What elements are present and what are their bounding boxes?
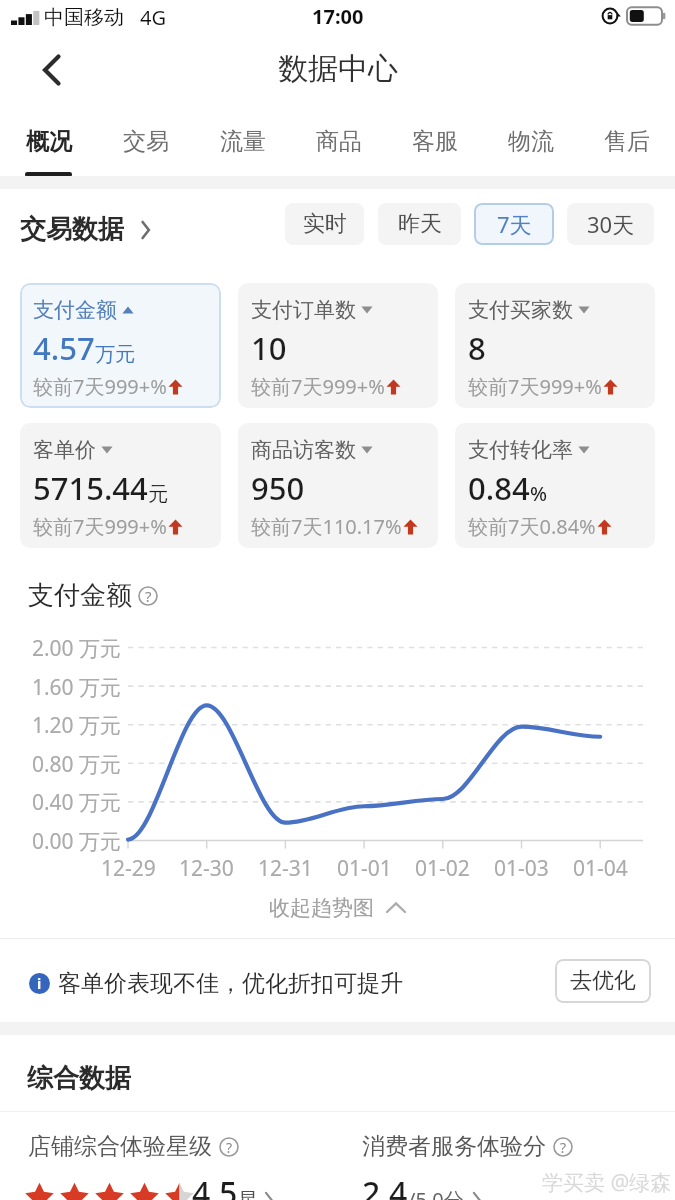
button[interactable]: 说明 (138, 586, 158, 606)
staticText: 实时 (303, 210, 347, 238)
button[interactable]: 返回 (0, 35, 70, 105)
staticText: 0.80 万元 (31, 750, 121, 776)
staticText: 收起趋势图 (269, 895, 374, 921)
staticText: 支付订单数 (251, 297, 356, 323)
staticText: 较前7天0.84% (468, 513, 596, 540)
button[interactable]: 支付金额 (20, 283, 221, 408)
button[interactable]: 客单价 (20, 423, 221, 548)
staticText: 客服 (412, 127, 458, 156)
staticText: 0.84 (468, 467, 530, 509)
staticText: 1.60 万元 (31, 673, 121, 699)
staticText: 元 (148, 482, 168, 507)
staticText: 星 (238, 1188, 258, 1200)
staticText: 5715.44 (33, 467, 148, 509)
staticText: 较前7天110.17% (251, 513, 402, 540)
staticText: 12-29 (101, 854, 156, 880)
staticText: 交易 (123, 127, 169, 156)
staticText: 售后 (604, 127, 650, 156)
button[interactable]: 7天 (474, 203, 554, 245)
button[interactable]: 售后 (579, 105, 675, 176)
staticText: 2.00 万元 (31, 634, 121, 660)
button[interactable]: 支付买家数 (455, 283, 655, 408)
staticText: 较前7天999+% (33, 513, 167, 540)
staticText: 综合数据 (27, 1062, 131, 1095)
staticText: /5.0分 (408, 1186, 464, 1200)
staticText: 支付买家数 (468, 297, 573, 323)
button[interactable]: 说明 (219, 1137, 239, 1157)
staticText: 支付转化率 (468, 437, 573, 463)
staticText: 支付金额 (33, 297, 117, 323)
staticText: 12-30 (179, 854, 234, 880)
staticText: ? (226, 1138, 233, 1157)
staticText: 万元 (95, 342, 135, 367)
button[interactable]: 物流 (483, 105, 579, 176)
staticText: 0.40 万元 (31, 788, 121, 814)
staticText: 商品访客数 (251, 437, 356, 463)
staticText: 较前7天999+% (468, 373, 602, 400)
button[interactable]: 客服 (387, 105, 483, 176)
staticText: ? (145, 586, 152, 606)
staticText: 支付金额 (28, 579, 132, 612)
staticText: 学买卖 @绿森 (542, 1168, 672, 1197)
button[interactable]: 实时 (285, 203, 364, 245)
staticText: 4G (140, 4, 166, 31)
staticText: 01-03 (494, 854, 549, 880)
staticText: 商品 (316, 127, 362, 156)
staticText: 数据中心 (278, 50, 398, 88)
staticText: 店铺综合体验星级 (28, 1132, 212, 1161)
staticText: 1.20 万元 (31, 711, 121, 737)
button[interactable]: 支付订单数 (238, 283, 438, 408)
staticText: 0.00 万元 (31, 827, 121, 853)
staticText: 较前7天999+% (251, 373, 385, 400)
staticText: 01-01 (337, 854, 392, 880)
button[interactable]: 收起趋势图 (269, 894, 407, 922)
staticText: i (37, 974, 42, 993)
staticText: 去优化 (570, 967, 636, 995)
staticText: 交易数据 (20, 213, 124, 246)
staticText: 950 (251, 467, 305, 509)
staticText: 物流 (508, 127, 554, 156)
staticText: 客单价表现不佳，优化折扣可提升 (58, 969, 403, 998)
staticText: 2.4 (362, 1171, 408, 1200)
staticText: 消费者服务体验分 (362, 1132, 546, 1161)
staticText: 7天 (497, 209, 532, 239)
staticText: 10 (251, 327, 287, 369)
staticText: % (530, 480, 548, 507)
button[interactable]: 概况 (0, 105, 97, 176)
staticText: 客单价 (33, 437, 96, 463)
staticText: 昨天 (398, 210, 442, 238)
staticText: 8 (468, 327, 486, 369)
button[interactable]: 流量 (194, 105, 291, 176)
button[interactable]: 交易 (97, 105, 194, 176)
button[interactable]: 支付转化率 (455, 423, 655, 548)
button[interactable]: 交易数据 (20, 213, 158, 246)
staticText: 中国移动 (44, 5, 124, 30)
staticText: ? (560, 1138, 567, 1157)
staticText: 较前7天999+% (33, 373, 167, 400)
staticText: 概况 (26, 127, 72, 156)
staticText: 4.57 (33, 327, 95, 369)
button[interactable]: 商品 (291, 105, 387, 176)
staticText: 17:00 (312, 3, 364, 30)
button[interactable]: 说明 (553, 1137, 573, 1157)
button[interactable]: 30天 (567, 203, 654, 245)
staticText: 4.5 (192, 1171, 238, 1200)
button[interactable]: 去优化 (555, 959, 651, 1003)
staticText: 01-02 (415, 854, 470, 880)
button[interactable]: 昨天 (378, 203, 461, 245)
staticText: 01-04 (573, 854, 628, 880)
staticText: 流量 (220, 127, 266, 156)
button[interactable]: 商品访客数 (238, 423, 438, 548)
staticText: 30天 (587, 209, 635, 239)
staticText: 12-31 (258, 854, 313, 880)
